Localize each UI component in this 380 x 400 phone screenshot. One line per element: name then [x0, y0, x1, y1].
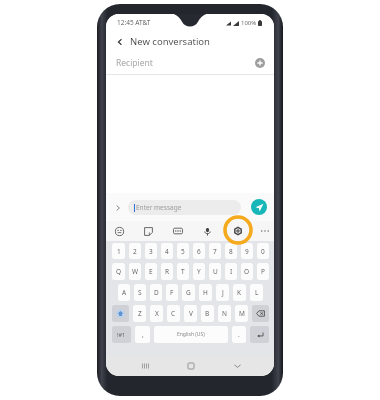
- button[interactable]: W: [129, 263, 141, 280]
- button[interactable]: A: [118, 284, 130, 301]
- button[interactable]: Back: [115, 37, 125, 47]
- button[interactable]: U: [209, 263, 221, 280]
- button[interactable]: V: [184, 305, 197, 322]
- staticText: .: [238, 330, 240, 339]
- staticText: 5: [181, 247, 185, 256]
- staticText: 12:45 AT&T: [117, 18, 151, 27]
- button[interactable]: 2: [129, 243, 141, 259]
- staticText: R: [165, 267, 170, 276]
- button[interactable]: Voice input: [199, 221, 215, 241]
- button[interactable]: O: [241, 263, 253, 280]
- staticText: G: [186, 288, 191, 297]
- staticText: K: [237, 288, 242, 297]
- button[interactable]: H: [199, 284, 212, 301]
- button[interactable]: D: [150, 284, 162, 301]
- button[interactable]: Y: [193, 263, 205, 280]
- button[interactable]: T: [177, 263, 189, 280]
- staticText: Y: [197, 267, 201, 276]
- staticText: 0: [261, 247, 265, 256]
- button[interactable]: Recent apps: [136, 356, 154, 376]
- button[interactable]: C: [167, 305, 180, 322]
- button[interactable]: More options: [257, 221, 273, 241]
- button[interactable]: 9: [241, 243, 253, 259]
- button[interactable]: J: [216, 284, 229, 301]
- staticText: Enter message: [136, 203, 182, 212]
- staticText: 1: [117, 247, 121, 256]
- button[interactable]: 5: [177, 243, 189, 259]
- button[interactable]: Recipient: [106, 52, 274, 74]
- staticText: B: [205, 309, 210, 318]
- staticText: T: [181, 267, 185, 276]
- button[interactable]: Shift: [112, 305, 129, 322]
- button[interactable]: N: [218, 305, 231, 322]
- button[interactable]: S: [134, 284, 146, 301]
- button[interactable]: R: [161, 263, 173, 280]
- staticText: Z: [138, 309, 142, 318]
- button[interactable]: X: [150, 305, 163, 322]
- button[interactable]: K: [233, 284, 246, 301]
- button[interactable]: Backspace: [252, 305, 269, 322]
- button[interactable]: Keyboard settings: [230, 221, 246, 241]
- button[interactable]: Back: [228, 356, 246, 376]
- staticText: !#1: [117, 331, 126, 338]
- staticText: F: [170, 288, 174, 297]
- button[interactable]: Back: [106, 31, 274, 52]
- staticText: Q: [116, 267, 122, 276]
- staticText: H: [203, 288, 208, 297]
- button[interactable]: G: [182, 284, 195, 301]
- staticText: New conversation: [130, 35, 210, 48]
- staticText: L: [255, 288, 259, 297]
- button[interactable]: Home: [182, 356, 200, 376]
- button[interactable]: Add recipient: [254, 57, 266, 69]
- button[interactable]: M: [235, 305, 248, 322]
- staticText: 7: [213, 247, 217, 256]
- button[interactable]: 8: [225, 243, 237, 259]
- button[interactable]: 0: [257, 243, 269, 259]
- button[interactable]: Z: [133, 305, 146, 322]
- staticText: U: [213, 267, 218, 276]
- button[interactable]: F: [166, 284, 178, 301]
- staticText: English (US): [177, 331, 205, 338]
- button[interactable]: 1: [112, 243, 125, 259]
- button[interactable]: 3: [145, 243, 157, 259]
- button[interactable]: 4: [161, 243, 173, 259]
- button[interactable]: Stickers: [140, 221, 156, 241]
- button[interactable]: Q: [112, 263, 125, 280]
- staticText: C: [171, 309, 176, 318]
- button[interactable]: Enter: [250, 326, 269, 343]
- button[interactable]: Space: [154, 326, 228, 343]
- staticText: W: [132, 267, 139, 276]
- staticText: D: [154, 288, 159, 297]
- button[interactable]: B: [201, 305, 214, 322]
- button[interactable]: .: [232, 326, 246, 343]
- staticText: O: [244, 267, 250, 276]
- staticText: I: [230, 267, 233, 276]
- button[interactable]: L: [250, 284, 263, 301]
- button[interactable]: ,: [135, 326, 150, 343]
- staticText: N: [222, 309, 227, 318]
- staticText: 4: [165, 247, 169, 256]
- button[interactable]: 6: [193, 243, 205, 259]
- staticText: V: [189, 309, 193, 318]
- button[interactable]: Send: [251, 199, 267, 215]
- button[interactable]: Show more: [112, 202, 123, 213]
- staticText: M: [239, 309, 245, 318]
- staticText: P: [261, 267, 265, 276]
- staticText: J: [222, 288, 224, 297]
- button[interactable]: Emoji: [111, 221, 127, 241]
- staticText: 2: [133, 247, 137, 256]
- button[interactable]: E: [145, 263, 157, 280]
- staticText: 100%: [241, 19, 257, 27]
- staticText: 6: [197, 247, 201, 256]
- button[interactable]: Enter message: [128, 200, 241, 215]
- button[interactable]: GIF keyboard: [170, 221, 186, 241]
- button[interactable]: 7: [209, 243, 221, 259]
- button[interactable]: Symbols: [112, 326, 131, 343]
- button[interactable]: I: [225, 263, 237, 280]
- staticText: Recipient: [116, 57, 153, 69]
- staticText: 8: [229, 247, 233, 256]
- staticText: ,: [142, 330, 144, 339]
- staticText: X: [155, 309, 159, 318]
- button[interactable]: P: [257, 263, 269, 280]
- staticText: S: [138, 288, 142, 297]
